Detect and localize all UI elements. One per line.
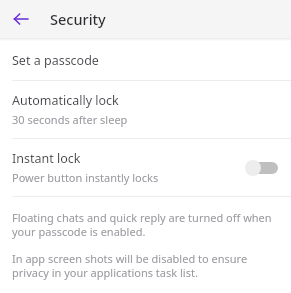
staticText: Instant lock bbox=[12, 150, 81, 167]
staticText: Security bbox=[50, 9, 106, 29]
staticText: 30 seconds after sleep bbox=[12, 112, 128, 127]
button[interactable]: Instant lock toggle bbox=[245, 157, 279, 179]
staticText: In app screen shots will be disabled to … bbox=[12, 251, 279, 280]
button[interactable]: Automatically lock bbox=[0, 81, 291, 138]
staticText: Set a passcode bbox=[12, 52, 99, 69]
staticText: Automatically lock bbox=[12, 92, 119, 109]
button[interactable]: Instant lock bbox=[0, 139, 291, 196]
staticText: Floating chats and quick reply are turne… bbox=[12, 210, 279, 240]
staticText: Power button instantly locks bbox=[12, 170, 159, 185]
button[interactable]: Back bbox=[6, 4, 36, 34]
button[interactable]: Set a passcode bbox=[0, 41, 291, 80]
